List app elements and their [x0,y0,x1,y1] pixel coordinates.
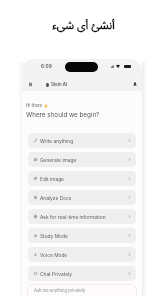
staticText: 6:09 [41,63,52,69]
staticText: Generate image [40,157,77,163]
button[interactable]: Ask me anything privately [27,284,137,296]
staticText: أنشئ أي شيء [52,13,115,33]
button[interactable]: Write anything [28,133,136,148]
staticText: Ask for real-time information [40,214,106,220]
staticText: Write anything [40,138,74,144]
button[interactable]: Generate image [28,152,136,167]
staticText: Voice Mode [40,252,68,258]
button[interactable]: Account [130,79,140,89]
button[interactable]: Ask for real-time information [28,209,136,224]
button[interactable]: Study Mode [28,228,136,243]
button[interactable]: Analyze Docs [28,190,136,205]
staticText: Analyze Docs [40,195,72,201]
staticText: Where should we begin? [26,111,100,119]
button[interactable]: Stein AI [46,82,67,87]
button[interactable]: Open menu [25,79,36,90]
button[interactable]: Edit image [28,171,136,186]
button[interactable]: Voice Mode [28,247,136,262]
staticText: Stein AI [51,82,67,87]
staticText: Ask me anything privately [34,288,86,293]
staticText: Chat Privately [40,271,72,277]
staticText: Study Mode [40,233,68,239]
staticText: Edit image [40,176,64,182]
staticText: Hi there [26,103,43,108]
button[interactable]: Chat Privately [28,266,136,281]
